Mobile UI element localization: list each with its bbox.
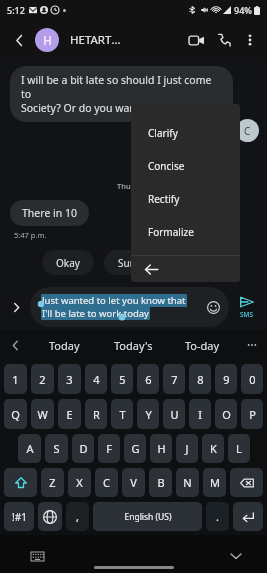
button[interactable]: Back	[8, 29, 30, 51]
button[interactable]: Concise	[131, 149, 240, 182]
button[interactable]: Backspace	[230, 468, 263, 497]
button[interactable]: Rectify	[131, 182, 240, 215]
button[interactable]: Call	[211, 27, 237, 53]
button[interactable]: H	[150, 434, 172, 463]
button[interactable]: K	[202, 434, 224, 463]
staticText: 1	[12, 372, 19, 387]
button[interactable]: Sure	[104, 250, 154, 275]
button[interactable]: D	[72, 434, 94, 463]
button[interactable]: Enter	[233, 502, 263, 531]
staticText: .	[216, 509, 219, 524]
button[interactable]: .	[206, 502, 229, 531]
staticText: G	[131, 441, 140, 456]
staticText: C	[103, 475, 110, 490]
button[interactable]: Change language	[38, 502, 62, 531]
button[interactable]: L	[228, 434, 250, 463]
button[interactable]: E	[58, 399, 81, 429]
button[interactable]: B	[149, 468, 172, 497]
button[interactable]: Today's	[99, 330, 168, 360]
button[interactable]: 7	[163, 364, 185, 394]
button[interactable]: J	[176, 434, 198, 463]
button[interactable]: T	[111, 399, 133, 429]
staticText: 4	[93, 372, 100, 387]
staticText: E	[66, 407, 73, 422]
staticText: Today's	[114, 338, 153, 353]
button[interactable]: More options	[237, 27, 263, 53]
button[interactable]: I will be a bit late so should I just co…	[10, 66, 233, 122]
button[interactable]: There in 10	[10, 200, 89, 226]
button[interactable]: ,	[66, 502, 89, 531]
button[interactable]: 8	[189, 364, 211, 394]
button[interactable]: A	[18, 434, 41, 463]
staticText: HETARTH BHAVIN…	[70, 32, 126, 48]
button[interactable]: M	[203, 468, 226, 497]
button[interactable]: Cool	[164, 250, 213, 275]
staticText: H	[43, 32, 52, 48]
button[interactable]: O	[215, 399, 237, 429]
staticText: Y	[145, 407, 152, 422]
button[interactable]: Expand	[5, 296, 27, 318]
button[interactable]: Emoji	[202, 296, 224, 318]
staticText: 8	[197, 372, 204, 387]
staticText: 9	[223, 372, 230, 387]
staticText: T	[119, 407, 126, 422]
button[interactable]: I	[189, 399, 211, 429]
button[interactable]: R	[85, 399, 107, 429]
staticText: W	[37, 407, 48, 422]
staticText: English (US)	[124, 511, 172, 523]
staticText: K	[210, 441, 217, 456]
staticText: Today	[49, 338, 80, 353]
button[interactable]: 5	[111, 364, 133, 394]
button[interactable]: Y	[137, 399, 159, 429]
button[interactable]: F	[98, 434, 120, 463]
button[interactable]: 2	[31, 364, 54, 394]
button[interactable]: Back	[131, 256, 240, 282]
button[interactable]: Just wanted to let you know that	[30, 287, 229, 327]
button[interactable]: Shift	[4, 468, 37, 497]
button[interactable]: 4	[85, 364, 107, 394]
button[interactable]: To-day	[168, 330, 237, 360]
staticText: I	[198, 407, 202, 422]
button[interactable]: Q	[4, 399, 27, 429]
button[interactable]: U	[163, 399, 185, 429]
staticText: L	[236, 441, 242, 456]
button[interactable]: Today	[30, 330, 99, 360]
button[interactable]: Hide keyboard	[227, 547, 245, 565]
staticText: R	[93, 407, 100, 422]
button[interactable]: G	[124, 434, 146, 463]
staticText: Okay	[56, 256, 80, 270]
button[interactable]: Send SMS	[232, 288, 262, 326]
button[interactable]: N	[176, 468, 199, 497]
button[interactable]: Formalize	[131, 215, 240, 248]
button[interactable]: 9	[215, 364, 237, 394]
button[interactable]: 1	[4, 364, 27, 394]
button[interactable]: 6	[137, 364, 159, 394]
staticText: ,	[76, 509, 79, 524]
button[interactable]: V	[122, 468, 145, 497]
button[interactable]: Clarify	[131, 116, 240, 149]
button[interactable]: Okay	[42, 250, 94, 275]
button[interactable]: Video call	[183, 27, 209, 53]
staticText: 6	[145, 372, 152, 387]
button[interactable]: W	[31, 399, 54, 429]
staticText: Rectify	[148, 192, 180, 206]
button[interactable]: X	[68, 468, 91, 497]
button[interactable]: Previous suggestions	[0, 330, 30, 360]
staticText: O	[222, 407, 231, 422]
button[interactable]: 3	[58, 364, 81, 394]
button[interactable]: English (US)	[93, 502, 202, 531]
button[interactable]: 0	[241, 364, 263, 394]
button[interactable]: Keyboard settings	[28, 547, 46, 565]
button[interactable]: C	[95, 468, 118, 497]
staticText: I'll be late to work today	[42, 307, 149, 320]
staticText: V	[130, 475, 137, 490]
staticText: N	[183, 475, 192, 490]
button[interactable]: P	[241, 399, 263, 429]
staticText: 2	[39, 372, 46, 387]
button[interactable]: More suggestions	[237, 330, 267, 360]
button[interactable]: Z	[41, 468, 64, 497]
button[interactable]: !#1	[4, 502, 34, 531]
button[interactable]: H	[35, 28, 59, 52]
button[interactable]: S	[45, 434, 68, 463]
